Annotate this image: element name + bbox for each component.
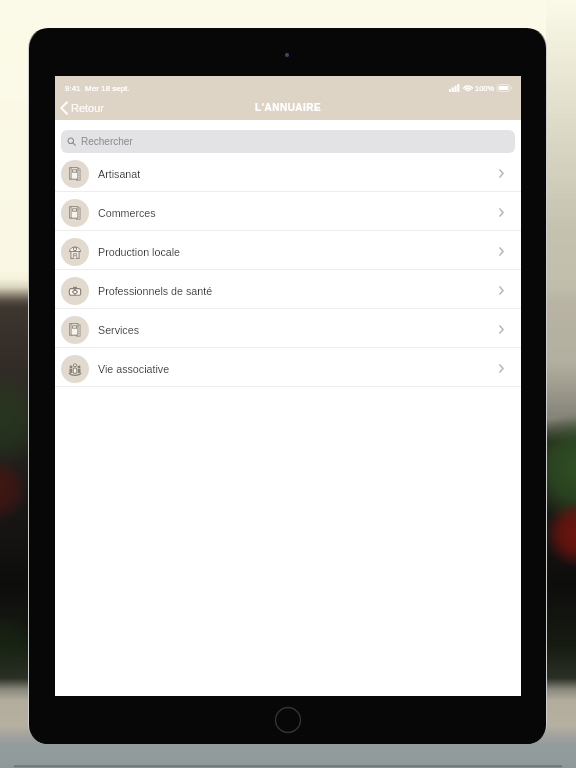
- staticText: Retour: [71, 102, 105, 114]
- button[interactable]: Production locale: [55, 231, 521, 269]
- button[interactable]: Vie associative: [55, 348, 521, 386]
- button[interactable]: Artisanat: [55, 153, 521, 191]
- staticText: 9:41 Mer 18 sept.: [65, 84, 130, 93]
- staticText: Commerces: [98, 207, 156, 219]
- staticText: Rechercher: [81, 136, 133, 147]
- button[interactable]: Professionnels de santé: [55, 270, 521, 308]
- staticText: Professionnels de santé: [98, 285, 213, 297]
- staticText: Artisanat: [98, 168, 141, 180]
- staticText: L'ANNUAIRE: [255, 102, 322, 113]
- other: Cellular signal: [449, 84, 460, 92]
- staticText: Services: [98, 324, 139, 336]
- staticText: Vie associative: [98, 363, 170, 375]
- other: Battery full: [497, 84, 512, 92]
- button[interactable]: Retour: [58, 98, 107, 118]
- staticText: Production locale: [98, 246, 180, 258]
- button[interactable]: Rechercher: [61, 130, 515, 153]
- other: Wi-Fi: [463, 84, 473, 92]
- staticText: 100%: [475, 84, 495, 92]
- button[interactable]: Services: [55, 309, 521, 347]
- button[interactable]: Commerces: [55, 192, 521, 230]
